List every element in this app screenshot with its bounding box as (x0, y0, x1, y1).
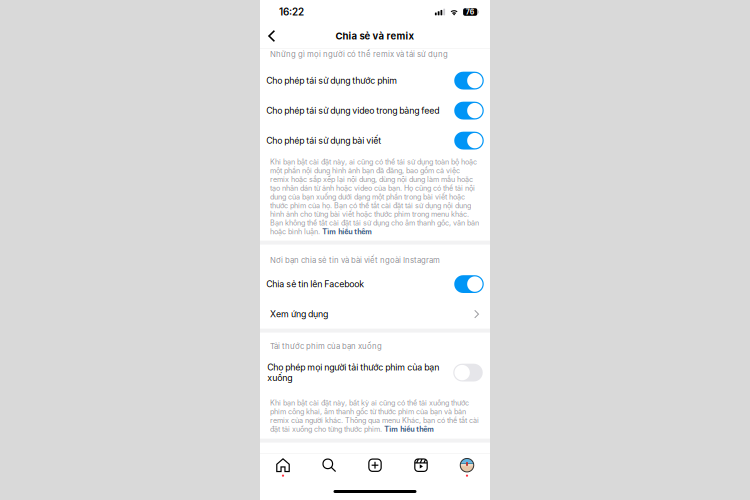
staticText: Khi bạn bật cài đặt này, bất kỳ ai cũng … (270, 399, 479, 425)
staticText: Tải thước phim của bạn xuống (270, 342, 382, 351)
button[interactable]: Tìm hiểu thêm (384, 425, 434, 433)
button[interactable]: Cho phép tái sử dụng video trong bảng fe… (260, 96, 490, 126)
button[interactable]: Back (260, 26, 283, 46)
button[interactable]: Tìm hiểu thêm (322, 227, 372, 236)
staticText: Nơi bạn chia sẻ tin và bài viết ngoài In… (270, 256, 440, 265)
staticText: Xem ứng dụng (270, 309, 328, 319)
button[interactable]: Xem ứng dụng (260, 300, 490, 329)
staticText: đặt tải xuống cho từng thước phim. (270, 425, 382, 433)
button[interactable]: Create (352, 454, 398, 482)
button[interactable]: Cho phép tái sử dụng thước phim (260, 66, 490, 96)
staticText: Cho phép tái sử dụng bài viết (266, 135, 381, 146)
staticText: Tìm hiểu thêm (322, 227, 372, 236)
button[interactable]: Profile (444, 454, 490, 482)
button[interactable]: Cho phép tái sử dụng bài viết (260, 126, 490, 156)
button[interactable]: Search (306, 454, 352, 482)
staticText: hoặc bình luận. (270, 227, 320, 236)
staticText: Cho phép mọi người tải thước phim của bạ… (267, 362, 439, 383)
button[interactable]: Reels (398, 454, 444, 482)
button[interactable]: Cho phép mọi người tải thước phim của bạ… (260, 355, 490, 391)
staticText: Chia sẻ và remix (335, 30, 414, 42)
staticText: Chia sẻ tin lên Facebook (266, 279, 364, 289)
button[interactable]: Chia sẻ tin lên Facebook (260, 269, 490, 300)
staticText: Tìm hiểu thêm (384, 425, 434, 433)
button[interactable]: Home (260, 454, 306, 482)
staticText: 16:22 (279, 6, 304, 18)
staticText: Khi bạn bật cài đặt này, ai cũng có thể … (270, 158, 479, 227)
staticText: Những gì mọi người có thể remix và tái s… (270, 50, 448, 59)
staticText: 76 (466, 8, 475, 16)
staticText: Cho phép tái sử dụng video trong bảng fe… (266, 105, 439, 116)
staticText: Cho phép tái sử dụng thước phim (266, 75, 397, 86)
